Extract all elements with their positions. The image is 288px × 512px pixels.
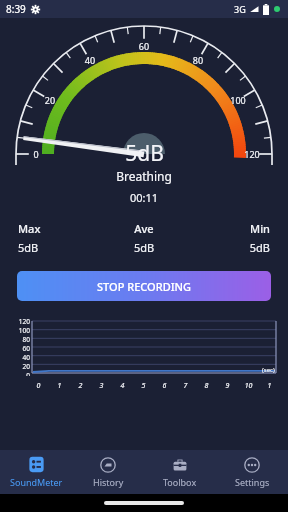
staticText: 80 [187,54,209,66]
staticText: STOP RECORDING [97,279,192,294]
staticText: 20 [6,362,30,371]
staticText: 7 [175,381,196,391]
staticText: SoundMeter [10,476,63,488]
staticText: 3G [234,3,246,15]
staticText: 5 [133,381,154,391]
staticText: 0 [6,371,30,376]
staticText: 5dB [18,240,102,255]
staticText: 2 [70,381,91,391]
staticText: 00:11 [0,190,288,205]
button[interactable]: Toolbox [144,450,216,494]
staticText: Min [186,221,270,236]
staticText: 8 [196,381,217,391]
staticText: 8:39 [6,2,26,16]
staticText: (sec) [262,366,275,374]
button[interactable]: SoundMeter [0,450,72,494]
other: Settings [244,457,260,473]
staticText: 9 [217,381,238,391]
staticText: 1 [259,381,280,391]
staticText: 5dB [102,240,186,255]
staticText: 0 [25,148,47,160]
staticText: History [93,476,124,488]
staticText: 120 [241,148,263,160]
staticText: 20 [39,94,61,106]
staticText: 5dB [186,240,270,255]
button[interactable]: History [72,450,144,494]
staticText: 6 [154,381,175,391]
button[interactable]: Settings [216,450,288,494]
staticText: 120 [6,317,30,326]
staticText: 40 [6,353,30,362]
staticText: 4 [112,381,133,391]
staticText: 40 [79,54,101,66]
staticText: Ave [102,221,186,236]
staticText: 60 [133,40,155,52]
staticText: Settings [235,476,270,488]
staticText: 100 [227,94,249,106]
staticText: 0 [28,381,49,391]
staticText: 80 [6,335,30,344]
staticText: Max [18,221,102,236]
staticText: Toolbox [163,476,197,488]
staticText: 3 [91,381,112,391]
staticText: Breathing [0,168,288,184]
staticText: 100 [6,326,30,335]
staticText: 1 [49,381,70,391]
button[interactable]: STOP RECORDING [17,271,271,301]
other: Toolbox [172,457,188,473]
staticText: 60 [6,344,30,353]
other: History [100,457,116,473]
staticText: 10 [238,381,259,391]
other: SoundMeter [28,456,45,473]
staticText: 5dB [125,139,164,168]
